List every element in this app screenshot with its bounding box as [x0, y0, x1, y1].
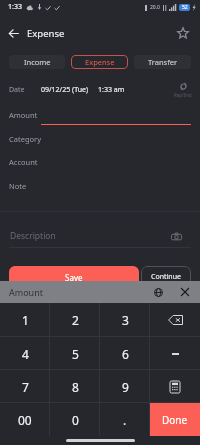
- button[interactable]: Back: [0, 20, 26, 46]
- button[interactable]: Rep/Inst: [174, 82, 192, 98]
- button[interactable]: Calculator: [150, 370, 200, 403]
- button[interactable]: Close keyboard: [174, 281, 196, 303]
- staticText: 1:33: [8, 2, 22, 12]
- staticText: Transfer: [148, 57, 178, 67]
- staticText: Account: [9, 157, 38, 167]
- button[interactable]: Change language: [147, 281, 169, 303]
- button[interactable]: 8: [50, 370, 100, 403]
- staticText: 2: [72, 312, 79, 328]
- button[interactable]: Done: [150, 403, 200, 436]
- button[interactable]: 7: [0, 370, 50, 403]
- button[interactable]: 9: [100, 370, 150, 403]
- button[interactable]: Attach photo: [169, 229, 183, 243]
- staticText: 52: [182, 4, 188, 11]
- staticText: Amount: [9, 110, 38, 120]
- staticText: 0: [72, 412, 79, 428]
- staticText: 4: [22, 346, 29, 362]
- button[interactable]: Backspace: [150, 303, 200, 337]
- staticText: 09/12/25 (Tue): [41, 85, 89, 95]
- staticText: Note: [9, 181, 27, 191]
- staticText: Rep/Inst: [174, 92, 192, 98]
- button[interactable]: 00: [0, 403, 50, 436]
- staticText: Save: [65, 272, 83, 283]
- staticText: 8: [72, 379, 79, 395]
- staticText: 7: [22, 379, 29, 395]
- button[interactable]: Minus: [150, 337, 200, 370]
- staticText: Description: [10, 230, 56, 242]
- button[interactable]: Income: [9, 55, 65, 69]
- button[interactable]: 2: [50, 303, 100, 337]
- button[interactable]: Expense: [71, 55, 128, 69]
- button[interactable]: Category: [0, 127, 200, 150]
- button[interactable]: 1: [0, 303, 50, 337]
- staticText: Category: [9, 134, 41, 144]
- staticText: Expense: [27, 27, 65, 40]
- button[interactable]: 6: [100, 337, 150, 370]
- staticText: Income: [24, 57, 51, 67]
- staticText: Date: [9, 85, 25, 95]
- staticText: 00: [18, 412, 32, 428]
- button[interactable]: .: [100, 403, 150, 436]
- staticText: 5: [72, 346, 79, 362]
- button[interactable]: Transfer: [134, 55, 191, 69]
- button[interactable]: Amount: [0, 103, 200, 126]
- button[interactable]: Note: [0, 174, 200, 197]
- button[interactable]: Continue: [141, 266, 191, 288]
- staticText: Done: [162, 413, 188, 427]
- staticText: 1: [22, 312, 29, 328]
- staticText: 20.0: [150, 4, 160, 11]
- button[interactable]: Favorite: [171, 21, 195, 45]
- button[interactable]: Account: [0, 150, 200, 173]
- staticText: Amount: [9, 286, 43, 298]
- staticText: 3: [122, 312, 129, 328]
- button[interactable]: 3: [100, 303, 150, 337]
- staticText: 9: [122, 379, 129, 395]
- button[interactable]: Save: [9, 266, 139, 288]
- button[interactable]: 5: [50, 337, 100, 370]
- button[interactable]: 09/12/25 (Tue): [41, 85, 125, 95]
- button[interactable]: 4: [0, 337, 50, 370]
- staticText: 6: [122, 346, 129, 362]
- button[interactable]: Description: [0, 224, 200, 247]
- button[interactable]: 0: [50, 403, 100, 436]
- staticText: Continue: [151, 272, 181, 282]
- staticText: .: [123, 412, 127, 428]
- staticText: Expense: [85, 57, 115, 67]
- staticText: 1:33 am: [98, 85, 125, 95]
